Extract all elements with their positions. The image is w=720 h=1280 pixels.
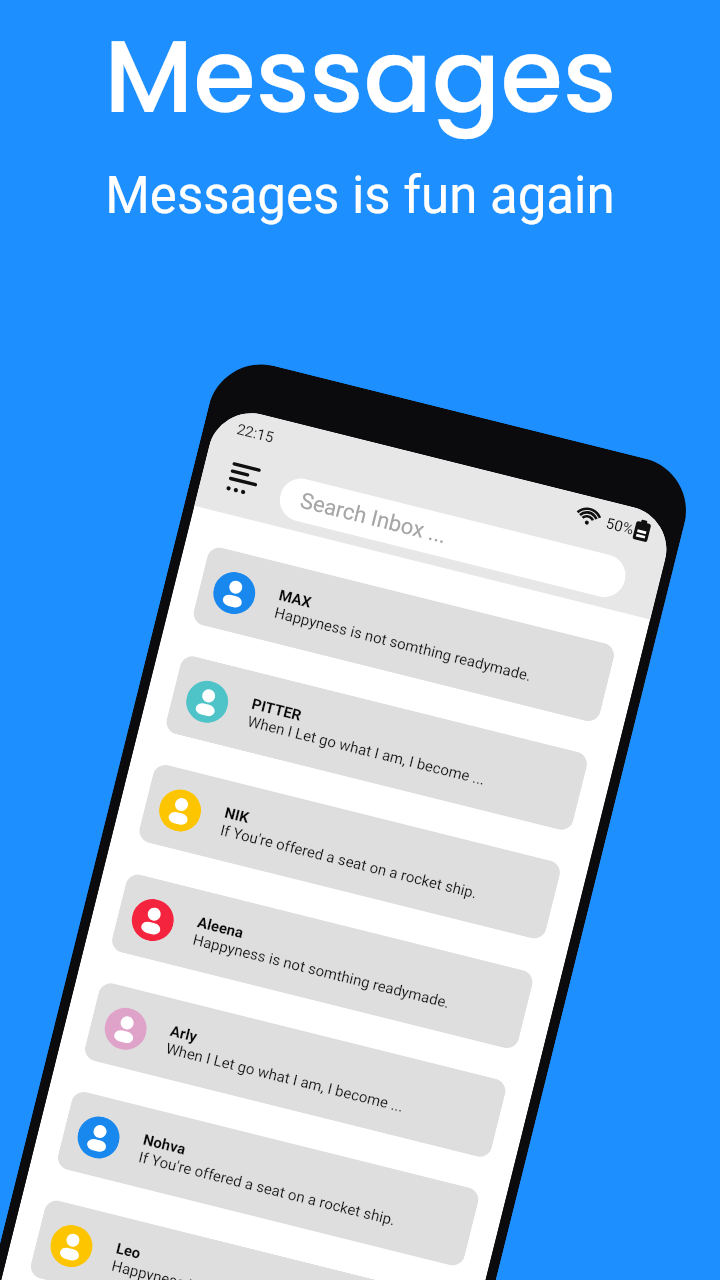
button[interactable]: Aleena <box>109 872 535 1051</box>
staticText: Aleena <box>195 913 245 942</box>
staticText: When I Let go what I am, I become ... <box>164 1039 406 1116</box>
button[interactable]: NIK <box>137 762 563 941</box>
staticText: Messages is fun again <box>105 166 615 226</box>
staticText: NIK <box>223 804 251 827</box>
button[interactable]: Nohva <box>55 1089 481 1268</box>
staticText: Arly <box>168 1022 200 1046</box>
staticText: If You're offered a seat on a rocket shi… <box>137 1148 397 1229</box>
staticText: Nohva <box>141 1131 188 1159</box>
staticText: When I Let go what I am, I become ... <box>245 712 488 789</box>
staticText: MAX <box>277 586 313 612</box>
button[interactable]: Leo <box>28 1198 454 1280</box>
button[interactable]: Search Inbox ... <box>275 474 630 602</box>
button[interactable]: MAX <box>191 545 617 724</box>
staticText: Happyness is not somthing readymade. <box>191 931 452 1012</box>
staticText: Leo <box>114 1239 143 1263</box>
button[interactable]: Menu <box>225 462 266 503</box>
staticText: Messages <box>104 6 617 147</box>
button[interactable]: PITTER <box>164 653 590 832</box>
staticText: If You're offered a seat on a rocket shi… <box>218 821 479 902</box>
staticText: Happyness is not somthing readymade. <box>110 1257 370 1280</box>
staticText: PITTER <box>250 695 304 725</box>
staticText: Happyness is not somthing readymade. <box>273 604 533 685</box>
staticText: 22:15 <box>235 420 276 447</box>
staticText: Search Inbox ... <box>297 488 449 549</box>
button[interactable]: Arly <box>82 980 508 1159</box>
staticText: 50% <box>604 514 636 538</box>
